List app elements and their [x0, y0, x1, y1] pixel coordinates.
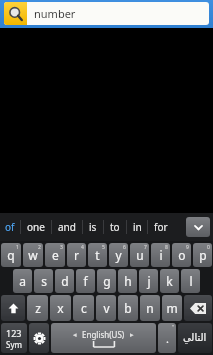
button[interactable]: v — [96, 295, 116, 321]
button[interactable]: x — [50, 295, 71, 321]
button[interactable]: 8 — [151, 243, 170, 267]
button[interactable]: d — [55, 269, 74, 293]
staticText: g — [103, 273, 111, 289]
staticText: for — [154, 220, 168, 234]
staticText: o — [178, 247, 186, 263]
staticText: 7 — [144, 244, 147, 251]
button[interactable]: Shift — [1, 295, 25, 321]
staticText: z — [35, 300, 41, 316]
staticText: ’’ — [172, 324, 174, 331]
button[interactable]: Expand suggestions — [186, 217, 210, 237]
button[interactable]: b — [118, 295, 138, 321]
staticText: m — [166, 300, 178, 316]
button[interactable]: for — [148, 213, 174, 241]
button[interactable]: and — [52, 213, 82, 241]
button[interactable]: Search — [4, 2, 209, 25]
staticText: in — [133, 220, 142, 234]
button[interactable]: m — [162, 295, 182, 321]
staticText: u — [136, 247, 144, 263]
button[interactable]: a — [13, 269, 32, 293]
staticText: 1 — [16, 244, 19, 251]
staticText: w — [28, 247, 38, 263]
button[interactable]: Search — [4, 2, 27, 25]
button[interactable]: j — [139, 269, 158, 293]
staticText: r — [74, 247, 79, 263]
button[interactable]: Backspace — [184, 295, 212, 321]
staticText: h — [124, 273, 132, 289]
staticText: n — [146, 300, 154, 316]
button[interactable]: 0 — [193, 243, 212, 267]
staticText: 9 — [186, 244, 189, 251]
button[interactable]: ’’ — [158, 323, 176, 353]
staticText: . — [166, 331, 169, 346]
staticText: q — [7, 247, 15, 263]
staticText: Sym — [6, 339, 22, 350]
staticText: f — [83, 273, 88, 289]
button[interactable]: z — [27, 295, 48, 321]
staticText: ▸ — [130, 331, 134, 339]
button[interactable]: is — [83, 213, 103, 241]
button[interactable]: n — [140, 295, 160, 321]
button[interactable]: in — [127, 213, 147, 241]
staticText: s — [41, 273, 47, 289]
staticText: 0 — [207, 244, 210, 251]
staticText: b — [124, 300, 132, 316]
staticText: l — [189, 273, 193, 289]
button[interactable]: to — [104, 213, 126, 241]
staticText: 6 — [123, 244, 126, 251]
button[interactable]: 4 — [67, 243, 86, 267]
staticText: p — [199, 247, 207, 263]
staticText: 8 — [165, 244, 168, 251]
staticText: 5 — [102, 244, 105, 251]
staticText: i — [159, 247, 163, 263]
button[interactable]: 5 — [88, 243, 107, 267]
staticText: c — [81, 300, 87, 316]
button[interactable]: k — [160, 269, 179, 293]
button[interactable]: 3 — [45, 243, 65, 267]
staticText: to — [110, 220, 120, 234]
button[interactable]: h — [118, 269, 137, 293]
staticText: 2 — [38, 244, 41, 251]
button[interactable]: 1 — [1, 243, 21, 267]
staticText: k — [166, 273, 173, 289]
staticText: a — [19, 273, 26, 289]
staticText: t — [95, 247, 100, 263]
staticText: x — [57, 300, 64, 316]
button[interactable]: Space, English US — [51, 323, 156, 353]
staticText: 123 — [6, 327, 22, 339]
staticText: one — [27, 220, 45, 234]
staticText: English(US) — [82, 329, 125, 340]
staticText: e — [52, 247, 59, 263]
button[interactable]: f — [76, 269, 95, 293]
staticText: v — [103, 300, 110, 316]
button[interactable]: 2 — [23, 243, 43, 267]
button[interactable]: g — [97, 269, 116, 293]
button[interactable]: of — [0, 213, 20, 241]
button[interactable]: Settings — [29, 323, 49, 353]
button[interactable]: l — [181, 269, 200, 293]
button[interactable]: 123 — [1, 323, 27, 353]
staticText: is — [89, 220, 97, 234]
staticText: y — [115, 247, 122, 263]
button[interactable]: c — [73, 295, 94, 321]
staticText: ◂ — [73, 331, 77, 339]
button[interactable]: التالي — [178, 323, 212, 353]
staticText: 4 — [81, 244, 84, 251]
button[interactable]: 9 — [172, 243, 191, 267]
button[interactable]: 7 — [130, 243, 149, 267]
staticText: 3 — [60, 244, 63, 251]
staticText: j — [147, 273, 151, 289]
button[interactable]: one — [21, 213, 51, 241]
staticText: التالي — [183, 332, 207, 344]
button[interactable]: s — [34, 269, 53, 293]
button[interactable]: 6 — [109, 243, 128, 267]
staticText: and — [58, 220, 76, 234]
staticText: number — [34, 6, 76, 21]
staticText: of — [5, 220, 15, 234]
staticText: d — [61, 273, 69, 289]
